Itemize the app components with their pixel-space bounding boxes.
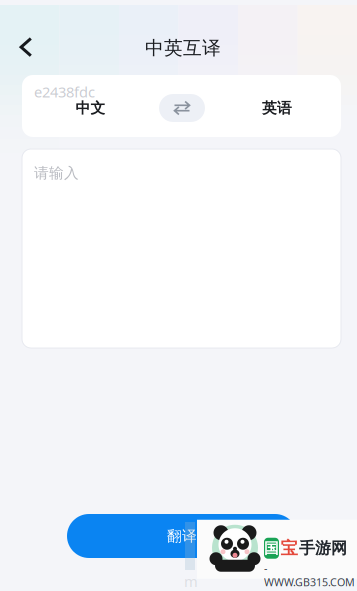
- staticText: - WWW.GB315.COM -: [264, 561, 355, 591]
- button[interactable]: 英语: [205, 77, 341, 139]
- button[interactable]: 翻译: [67, 514, 297, 558]
- button[interactable]: Swap languages: [159, 94, 205, 122]
- staticText: 翻译: [167, 527, 197, 545]
- staticText: 英语: [262, 99, 292, 117]
- staticText: 手游网: [299, 538, 347, 558]
- staticText: 国: [264, 539, 279, 557]
- staticText: m: [184, 571, 198, 591]
- button[interactable]: Back: [0, 28, 47, 66]
- staticText: 中英互译: [145, 36, 221, 59]
- staticText: 请输入: [34, 164, 79, 182]
- staticText: 中文: [75, 99, 105, 117]
- button[interactable]: 中文: [22, 77, 159, 139]
- staticText: 宝: [280, 538, 297, 559]
- staticText: e2438fdc: [34, 82, 95, 101]
